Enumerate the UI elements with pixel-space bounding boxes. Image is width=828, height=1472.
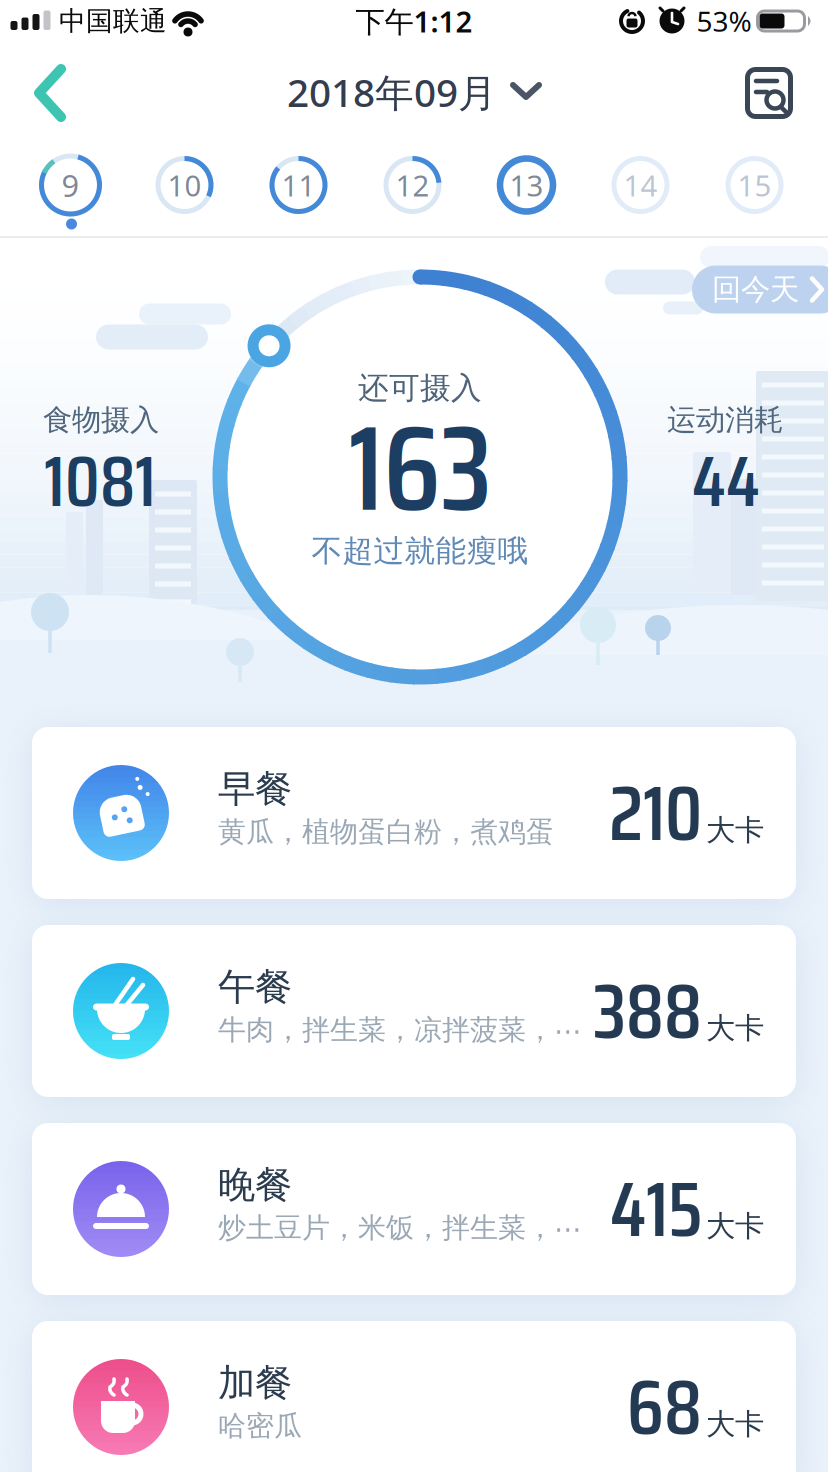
button[interactable]: 9月10日	[139, 140, 229, 230]
staticText: 9	[61, 165, 79, 205]
staticText: 炒土豆片，米饭，拌生菜，⋯	[218, 1211, 582, 1245]
staticText: 早餐	[218, 766, 292, 812]
staticText: 还可摄入	[358, 369, 482, 407]
staticText: 哈密瓜	[218, 1409, 302, 1443]
staticText: 中国联通	[59, 5, 167, 37]
staticText: 运动消耗	[667, 402, 783, 438]
staticText: 1081	[44, 424, 156, 538]
button[interactable]: 饮食记录	[745, 67, 793, 119]
button[interactable]: 9月9日	[25, 140, 115, 230]
button[interactable]: 2018年09月	[287, 66, 541, 118]
staticText: 下午1:12	[355, 1, 472, 40]
staticText: 11	[281, 165, 315, 204]
staticText: 食物摄入	[43, 402, 159, 438]
staticText: 14	[623, 165, 657, 204]
staticText: 大卡	[706, 1010, 764, 1046]
staticText: 大卡	[706, 1208, 764, 1244]
button[interactable]: 午餐	[32, 925, 796, 1097]
button[interactable]: 9月13日	[481, 140, 571, 230]
staticText: 388	[593, 950, 702, 1072]
button[interactable]: 返回	[30, 64, 70, 122]
staticText: 牛肉，拌生菜，凉拌菠菜，⋯	[218, 1013, 582, 1047]
staticText: 大卡	[706, 812, 764, 848]
staticText: 2018年09月	[287, 66, 497, 118]
staticText: 大卡	[706, 1406, 764, 1442]
button[interactable]: 加餐	[32, 1321, 796, 1472]
button[interactable]: 回今天	[692, 265, 828, 313]
staticText: 44	[692, 424, 760, 538]
button[interactable]: 晚餐	[32, 1123, 796, 1295]
staticText: 黄瓜，植物蛋白粉，煮鸡蛋	[218, 815, 554, 849]
button[interactable]: 早餐	[32, 727, 796, 899]
button[interactable]: 9月15日	[709, 140, 799, 230]
staticText: 回今天	[712, 271, 799, 307]
staticText: 不超过就能瘦哦	[311, 532, 528, 570]
staticText: 13	[509, 165, 543, 204]
staticText: 415	[610, 1148, 702, 1270]
staticText: 163	[348, 374, 491, 562]
staticText: 15	[737, 165, 771, 204]
staticText: 晚餐	[218, 1162, 292, 1208]
staticText: 68	[627, 1346, 702, 1468]
button[interactable]: 9月11日	[253, 140, 343, 230]
staticText: 10	[167, 165, 201, 204]
staticText: 加餐	[218, 1360, 292, 1406]
staticText: 53%	[696, 2, 751, 40]
staticText: 12	[395, 165, 429, 204]
staticText: 210	[609, 752, 702, 874]
button[interactable]: 9月14日	[595, 140, 685, 230]
button[interactable]: 9月12日	[367, 140, 457, 230]
staticText: 午餐	[218, 964, 292, 1010]
